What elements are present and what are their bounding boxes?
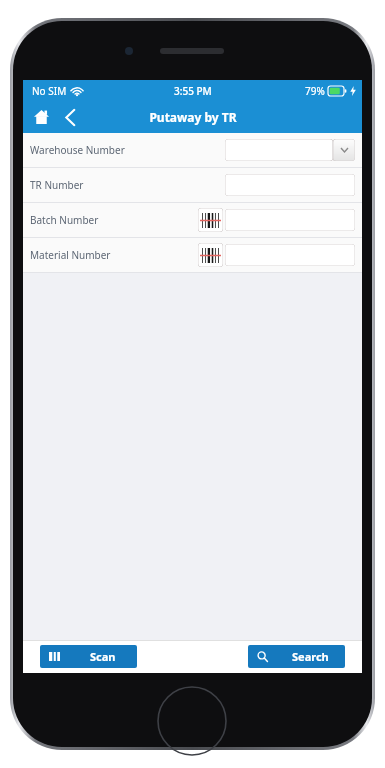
button[interactable]: Material Number	[225, 244, 355, 266]
staticText: 79%	[305, 84, 325, 98]
staticText: 3:55 PM	[174, 84, 212, 98]
staticText: Batch Number	[30, 213, 99, 227]
button[interactable]: Material Number	[23, 238, 362, 272]
button[interactable]: Back	[56, 103, 84, 131]
button[interactable]: Search	[248, 645, 345, 668]
button[interactable]: Scan	[40, 645, 137, 668]
button[interactable]: Batch Number	[225, 209, 355, 231]
button[interactable]: Home	[27, 103, 55, 131]
button[interactable]: Warehouse Number	[23, 133, 362, 167]
button[interactable]: TR Number	[23, 168, 362, 202]
button[interactable]: Scan barcode	[198, 243, 223, 267]
staticText: Search	[292, 649, 329, 664]
staticText: TR Number	[30, 178, 84, 192]
staticText: Putaway by TR	[149, 109, 237, 125]
staticText: No SIM	[32, 84, 67, 98]
staticText: Scan	[90, 649, 116, 664]
button[interactable]: Batch Number	[23, 203, 362, 237]
staticText: Warehouse Number	[30, 143, 125, 157]
button[interactable]: Select warehouse number	[225, 139, 355, 161]
staticText: Material Number	[30, 248, 111, 262]
button[interactable]: Scan barcode	[198, 208, 223, 232]
button[interactable]: TR Number	[225, 174, 355, 196]
